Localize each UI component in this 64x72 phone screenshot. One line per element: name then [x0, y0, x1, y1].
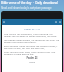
button[interactable]: Menu	[2, 20, 6, 24]
staticText: The Lord is my shepherd, I lack nothing.…	[4, 32, 60, 37]
button[interactable]: Share	[58, 20, 62, 24]
staticText: your rod and your staff, they comfort me…	[4, 50, 60, 55]
staticText: me beside quiet waters, he refreshes my …	[4, 38, 60, 43]
staticText: Bible verse of the day · Daily devotiona…	[1, 1, 63, 5]
staticText: Read and share today's scripture passage	[1, 6, 52, 10]
staticText: Even though I walk through the darkest v…	[4, 44, 60, 49]
staticText: Psalm 23	[4, 56, 60, 59]
staticText: Psalm 23 : 1-6	[4, 27, 60, 30]
button[interactable]: share	[4, 61, 60, 64]
button[interactable]: Bookmark	[54, 20, 58, 24]
